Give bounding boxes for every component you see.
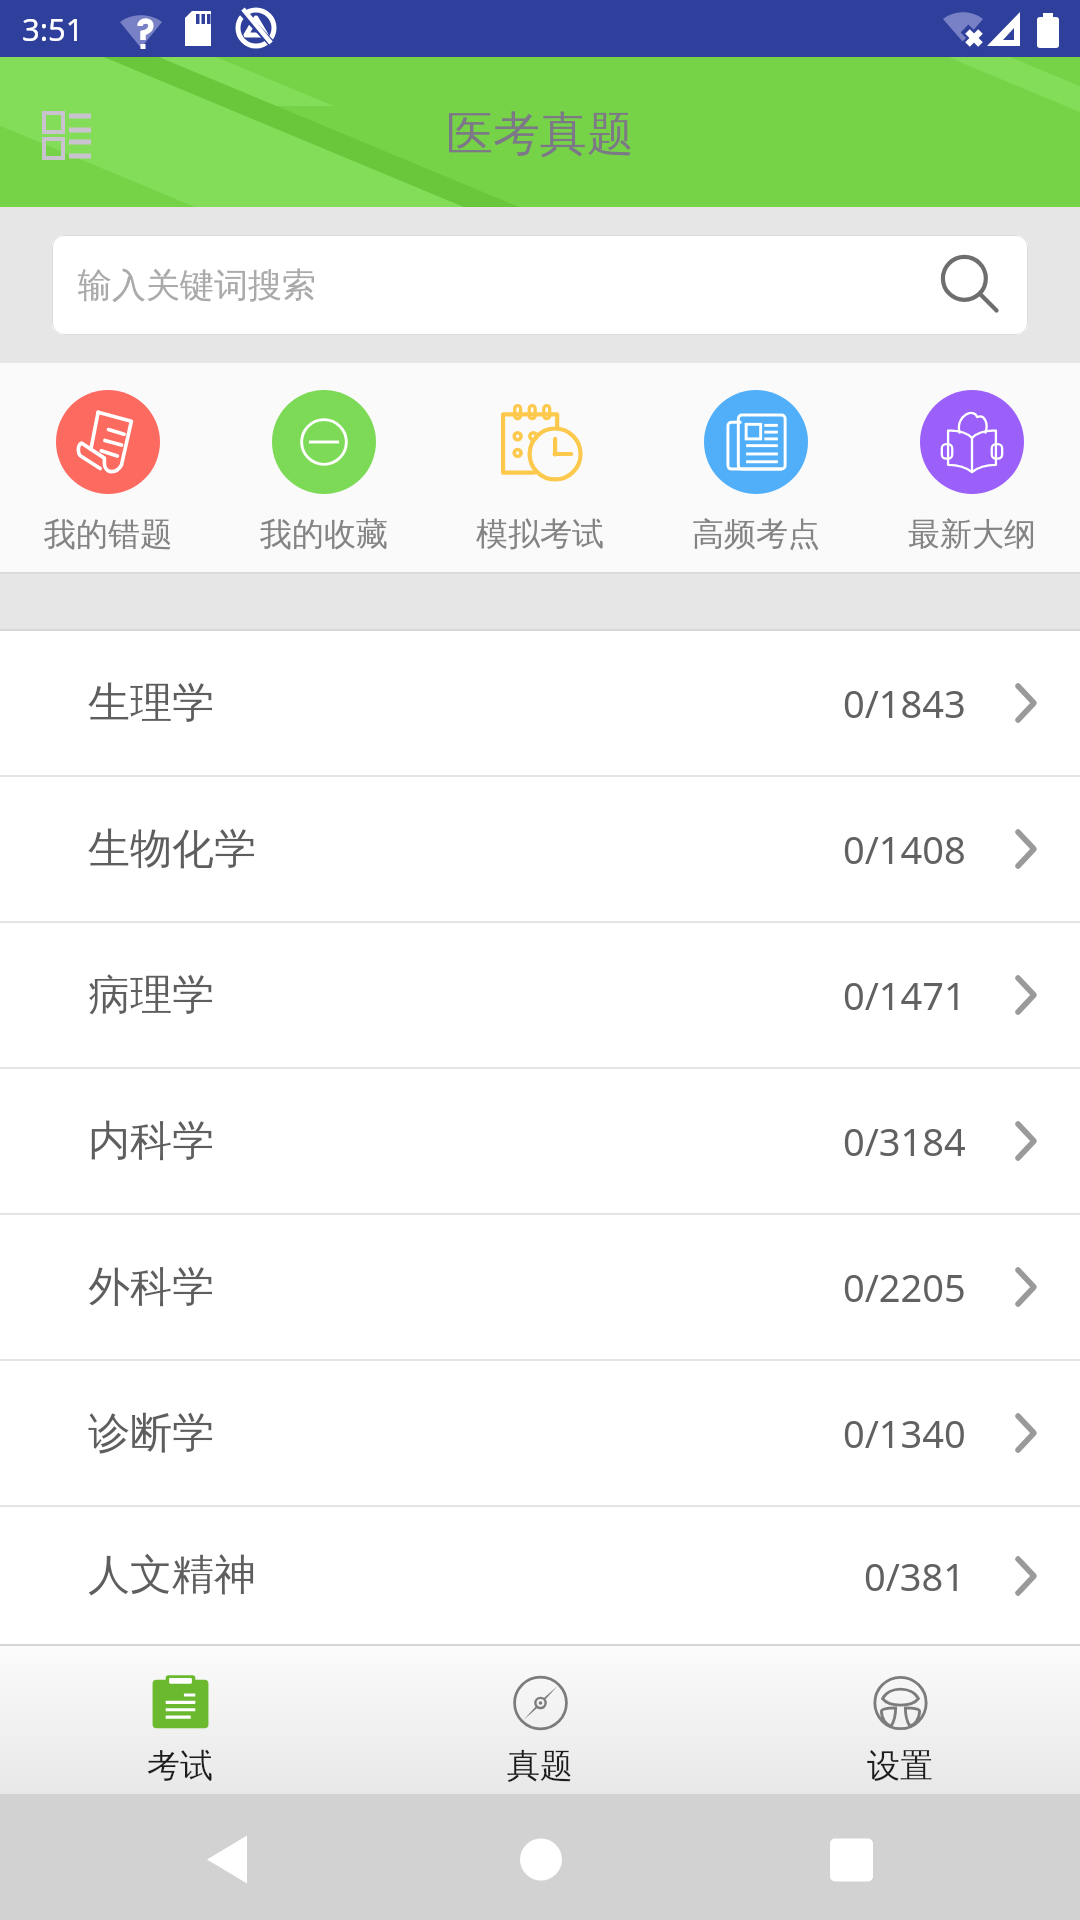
staticText: 真题 bbox=[507, 1745, 573, 1787]
staticText: 0/3184 bbox=[843, 1115, 966, 1167]
staticText: 模拟考试 bbox=[476, 514, 604, 554]
staticText: 医考真题 bbox=[446, 105, 634, 164]
button[interactable]: 诊断学 bbox=[0, 1361, 1080, 1505]
staticText: 诊断学 bbox=[88, 1407, 214, 1460]
staticText: 最新大纲 bbox=[908, 514, 1036, 554]
button[interactable]: 设置 bbox=[720, 1653, 1080, 1787]
staticText: 0/2205 bbox=[843, 1261, 966, 1313]
staticText: 考试 bbox=[147, 1745, 213, 1787]
button[interactable]: Menu bbox=[23, 92, 113, 182]
staticText: 高频考点 bbox=[692, 514, 820, 554]
staticText: 外科学 bbox=[88, 1261, 214, 1314]
staticText: 我的错题 bbox=[44, 514, 172, 554]
button[interactable]: 我的收藏 bbox=[216, 390, 432, 554]
button[interactable]: 外科学 bbox=[0, 1215, 1080, 1359]
button[interactable]: 模拟考试 bbox=[432, 390, 648, 554]
staticText: 0/1843 bbox=[843, 677, 966, 729]
button[interactable]: 人文精神 bbox=[0, 1507, 1080, 1644]
button[interactable]: 高频考点 bbox=[648, 390, 864, 554]
staticText: 人文精神 bbox=[88, 1549, 256, 1602]
staticText: 病理学 bbox=[88, 969, 214, 1022]
button[interactable]: 我的错题 bbox=[0, 390, 216, 554]
button[interactable]: 考试 bbox=[0, 1653, 360, 1787]
staticText: 0/381 bbox=[864, 1550, 966, 1602]
staticText: 输入关键词搜索 bbox=[78, 264, 316, 307]
staticText: 生理学 bbox=[88, 677, 214, 730]
staticText: 生物化学 bbox=[88, 823, 256, 876]
button[interactable]: Search bbox=[52, 235, 1028, 335]
button[interactable]: 生理学 bbox=[0, 631, 1080, 775]
staticText: 我的收藏 bbox=[260, 514, 388, 554]
staticText: 0/1471 bbox=[843, 969, 966, 1021]
staticText: 内科学 bbox=[88, 1115, 214, 1168]
button[interactable]: 最新大纲 bbox=[864, 390, 1080, 554]
button[interactable]: 内科学 bbox=[0, 1069, 1080, 1213]
button[interactable]: 生物化学 bbox=[0, 777, 1080, 921]
button[interactable]: 病理学 bbox=[0, 923, 1080, 1067]
staticText: 设置 bbox=[867, 1745, 933, 1787]
staticText: 0/1408 bbox=[843, 823, 966, 875]
staticText: 0/1340 bbox=[843, 1407, 966, 1459]
staticText: 3:51 bbox=[22, 8, 84, 50]
button[interactable]: 真题 bbox=[360, 1653, 720, 1787]
